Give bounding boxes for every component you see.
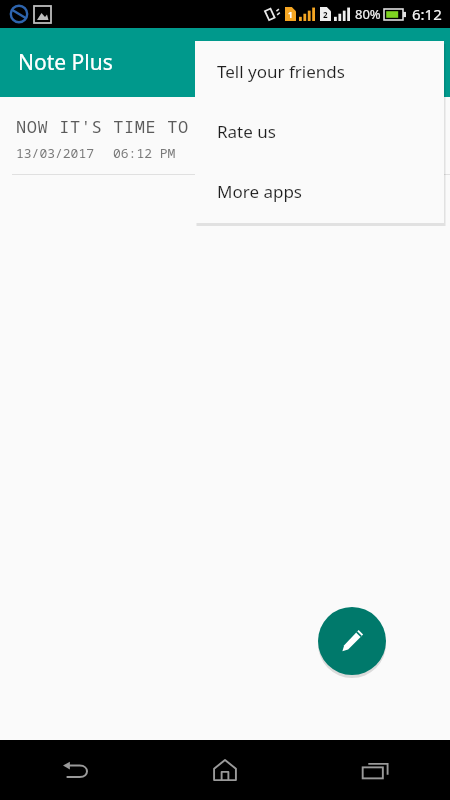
staticText: 1 — [288, 9, 293, 20]
staticText: 06:12 PM — [113, 144, 176, 162]
staticText: 13/03/2017 — [16, 144, 95, 162]
staticText: 80% — [355, 5, 381, 23]
staticText: 2 — [323, 9, 328, 20]
button[interactable]: New note — [318, 607, 386, 675]
button[interactable]: Rate us — [195, 101, 444, 161]
button[interactable]: Back — [0, 740, 150, 800]
staticText: 6:12 — [412, 4, 442, 24]
button[interactable]: Recent apps — [300, 740, 450, 800]
button[interactable]: Home — [150, 740, 300, 800]
button[interactable]: Tell your friends — [195, 41, 444, 101]
staticText: NOW IT'S TIME TO CHANGE — [16, 115, 265, 138]
staticText: More apps — [217, 180, 302, 203]
staticText: Rate us — [217, 120, 276, 143]
button[interactable]: More apps — [195, 161, 444, 221]
button[interactable]: NOW IT'S TIME TO CHANGE — [0, 97, 450, 175]
staticText: Note Plus — [18, 48, 113, 77]
staticText: Tell your friends — [217, 60, 345, 83]
